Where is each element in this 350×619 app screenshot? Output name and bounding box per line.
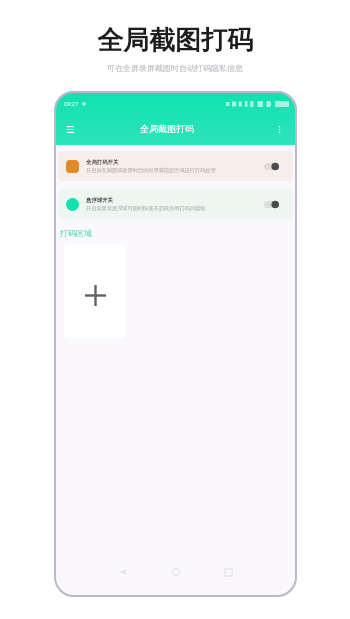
staticText: 开启后在截图或录屏时自动对屏幕指定区域进行打码处理	[86, 167, 216, 174]
staticText: 开启后显示悬浮球可随时快速开启或关闭打码功能啦	[86, 205, 206, 212]
button[interactable]: More options	[271, 121, 287, 137]
staticText: 全局打码开关	[86, 159, 119, 166]
button[interactable]: Toggle	[264, 162, 279, 171]
button[interactable]: Toggle	[264, 200, 279, 209]
staticText: 全局截图打码	[140, 123, 194, 134]
button[interactable]: Menu	[62, 121, 78, 137]
staticText: 悬浮球开关	[86, 197, 113, 204]
staticText: 全局截图打码	[97, 24, 253, 57]
button[interactable]: Recents	[216, 560, 240, 584]
button[interactable]: 全局打码开关	[58, 151, 293, 181]
staticText: 可在全屏录屏截图时自动打码隐私信息	[107, 63, 243, 73]
button[interactable]: Add mosaic area	[64, 244, 126, 339]
staticText: 打码区域	[60, 228, 92, 238]
staticText: 09:27	[64, 100, 79, 107]
button[interactable]: Home	[164, 560, 188, 584]
button[interactable]: Back	[111, 560, 135, 584]
button[interactable]: 悬浮球开关	[58, 189, 293, 219]
